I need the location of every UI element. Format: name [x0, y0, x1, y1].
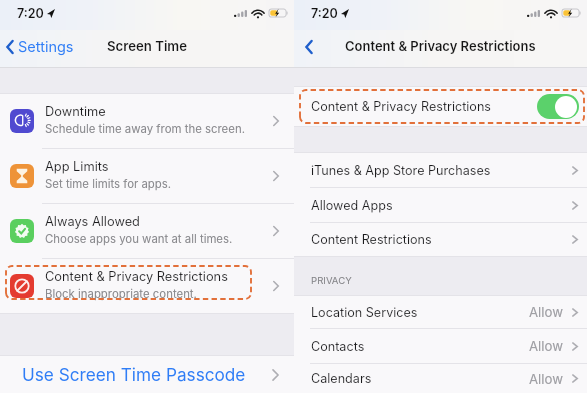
button[interactable]: Toggle Content and Privacy Restrictions	[537, 94, 579, 119]
staticText: Allow	[529, 371, 563, 387]
staticText: Contacts	[311, 339, 365, 354]
staticText: Settings	[18, 38, 74, 56]
staticText: Calendars	[311, 371, 372, 386]
staticText: Choose apps you want at all times.	[45, 232, 233, 246]
button[interactable]: Calendars	[294, 364, 587, 393]
staticText: Block inappropriate content.	[45, 287, 197, 301]
staticText: Set time limits for apps.	[45, 177, 172, 191]
staticText: 7:20	[17, 6, 44, 21]
button[interactable]: Use Screen Time Passcode	[0, 356, 294, 393]
button[interactable]: Downtime	[0, 94, 294, 148]
button[interactable]: Content & Privacy Restrictions	[294, 87, 587, 126]
staticText: Schedule time away from the screen.	[45, 122, 245, 136]
staticText: Downtime	[45, 104, 106, 119]
staticText: Allow	[529, 338, 563, 354]
staticText: iTunes & App Store Purchases	[311, 163, 491, 178]
button[interactable]: App Limits	[0, 149, 294, 203]
staticText: Use Screen Time Passcode	[22, 364, 246, 385]
staticText: Content Restrictions	[311, 232, 432, 247]
staticText: Location Services	[311, 305, 418, 320]
button[interactable]: Settings	[4, 37, 75, 61]
staticText: App Limits	[45, 159, 109, 174]
staticText: 7:20	[311, 6, 338, 21]
button[interactable]: iTunes & App Store Purchases	[294, 153, 587, 187]
button[interactable]: Content Restrictions	[294, 223, 587, 256]
staticText: Content & Privacy Restrictions	[345, 38, 536, 54]
staticText: Screen Time	[107, 38, 188, 54]
staticText: PRIVACY	[311, 275, 352, 287]
button[interactable]: Always Allowed	[0, 204, 294, 258]
button[interactable]: Allowed Apps	[294, 188, 587, 222]
button[interactable]: Location Services	[294, 296, 587, 328]
button[interactable]: Back	[298, 36, 320, 62]
staticText: Content & Privacy Restrictions	[45, 269, 228, 284]
staticText: Always Allowed	[45, 214, 140, 229]
staticText: Content & Privacy Restrictions	[311, 99, 491, 114]
button[interactable]: Content & Privacy Restrictions	[0, 259, 294, 313]
staticText: Allowed Apps	[311, 198, 393, 213]
staticText: Allow	[529, 304, 563, 320]
button[interactable]: Contacts	[294, 329, 587, 363]
